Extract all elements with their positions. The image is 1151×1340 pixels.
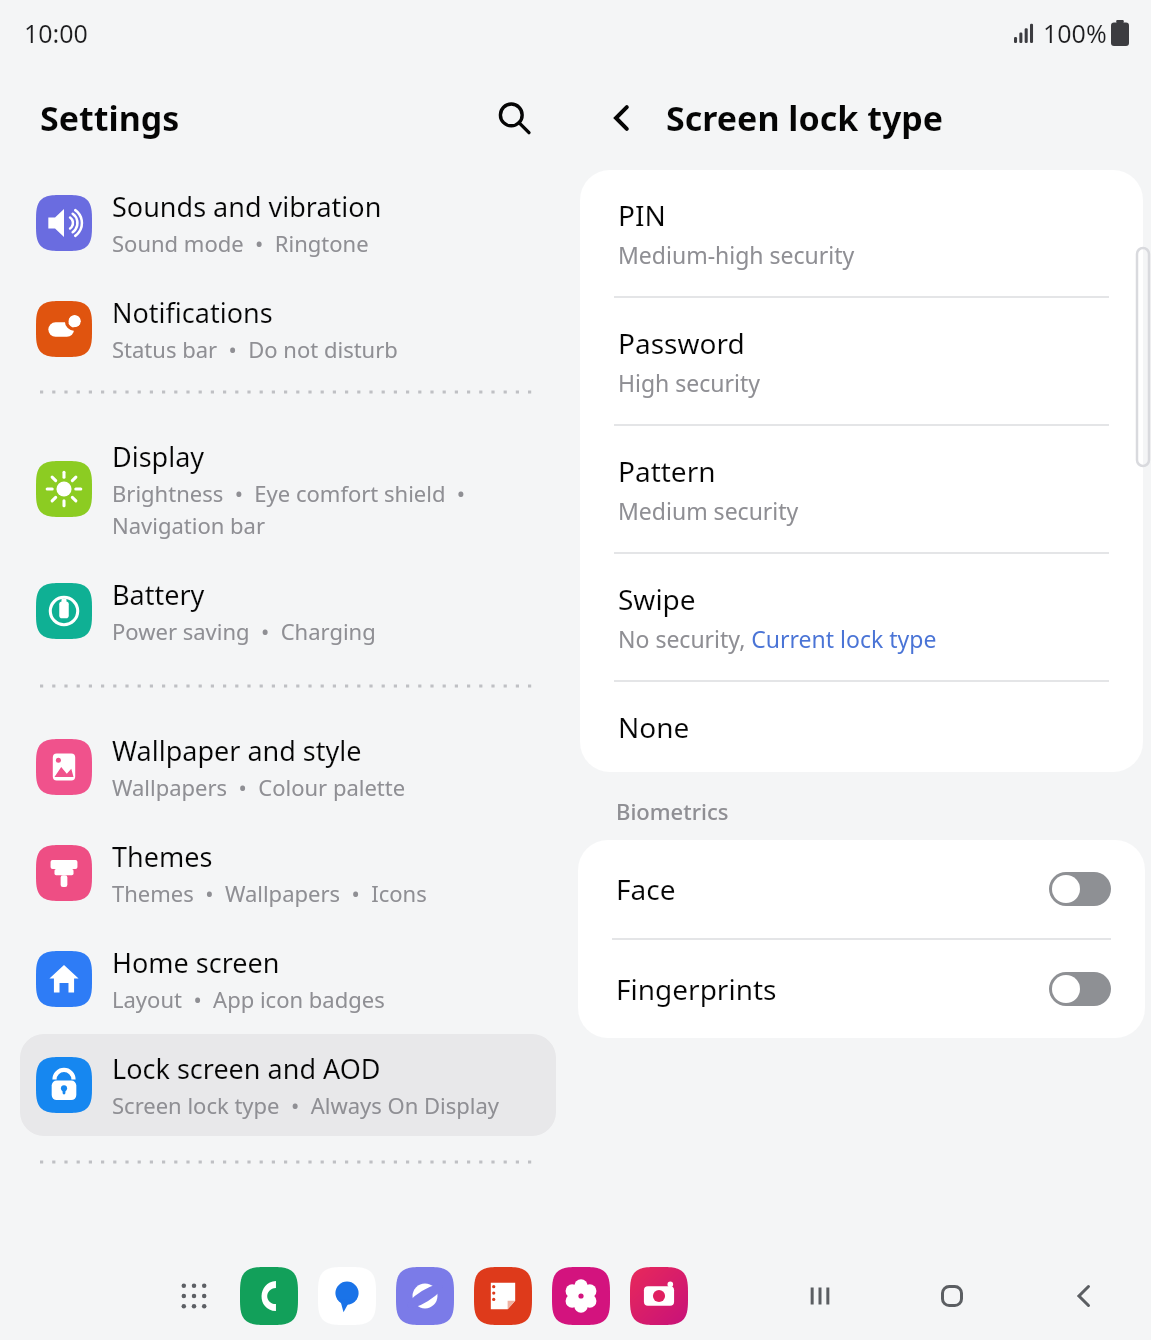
staticText: Settings: [40, 95, 180, 141]
staticText: Navigation bar: [112, 510, 265, 540]
button[interactable]: internet: [396, 1267, 454, 1325]
staticText: Themes: [112, 838, 213, 875]
staticText: Home screen: [112, 944, 280, 981]
button[interactable]: PIN: [580, 170, 1143, 298]
staticText: Password: [618, 324, 745, 362]
button[interactable]: Apps: [168, 1270, 220, 1322]
staticText: None: [618, 708, 690, 746]
staticText: Lock screen and AOD: [112, 1050, 381, 1087]
staticText: Sound mode • Ringtone: [112, 228, 369, 258]
button[interactable]: None: [580, 682, 1143, 772]
button[interactable]: Notifications: [20, 278, 556, 380]
button[interactable]: Themes: [20, 822, 556, 924]
button[interactable]: Home: [925, 1269, 979, 1323]
button[interactable]: camera: [630, 1267, 688, 1325]
staticText: Wallpaper and style: [112, 732, 362, 769]
button[interactable]: notes: [474, 1267, 532, 1325]
button[interactable]: Pattern: [580, 426, 1143, 554]
staticText: Notifications: [112, 294, 273, 331]
staticText: Screen lock type: [666, 95, 944, 141]
button[interactable]: Home screen: [20, 928, 556, 1030]
staticText: Power saving • Charging: [112, 616, 376, 646]
button[interactable]: phone: [240, 1267, 298, 1325]
staticText: Layout • App icon badges: [112, 984, 385, 1014]
staticText: Medium security: [618, 495, 799, 526]
staticText: Wallpapers • Colour palette: [112, 772, 406, 802]
staticText: Fingerprints: [616, 970, 777, 1008]
button[interactable]: Back: [1057, 1269, 1111, 1323]
button[interactable]: Swipe: [580, 554, 1143, 682]
staticText: Medium-high security: [618, 239, 855, 270]
staticText: High security: [618, 367, 761, 398]
staticText: Face: [616, 870, 676, 908]
staticText: Battery: [112, 576, 205, 613]
button[interactable]: Search: [484, 88, 544, 148]
button[interactable]: Fingerprints: [578, 940, 1145, 1038]
button[interactable]: Battery: [20, 560, 556, 662]
button[interactable]: Sounds and vibration: [20, 172, 556, 274]
staticText: Swipe: [618, 580, 696, 618]
staticText: Display: [112, 438, 205, 475]
button[interactable]: Face: [578, 840, 1145, 938]
staticText: Themes • Wallpapers • Icons: [112, 878, 427, 908]
button[interactable]: Display: [20, 422, 556, 556]
staticText: Sounds and vibration: [112, 188, 382, 225]
staticText: No security, Current lock type: [618, 623, 937, 654]
button[interactable]: Password: [580, 298, 1143, 426]
staticText: 10:00: [24, 16, 88, 50]
button[interactable]: Recents: [793, 1269, 847, 1323]
staticText: Screen lock type • Always On Display: [112, 1090, 500, 1120]
button[interactable]: Back: [594, 90, 650, 146]
button[interactable]: Wallpaper and style: [20, 716, 556, 818]
staticText: Brightness • Eye comfort shield •: [112, 478, 466, 508]
staticText: Biometrics: [616, 796, 729, 826]
staticText: Status bar • Do not disturb: [112, 334, 398, 364]
staticText: PIN: [618, 196, 666, 234]
staticText: Pattern: [618, 452, 716, 490]
button[interactable]: messages: [318, 1267, 376, 1325]
button[interactable]: gallery: [552, 1267, 610, 1325]
staticText: 100%: [1043, 16, 1107, 50]
button[interactable]: Lock screen and AOD: [20, 1034, 556, 1136]
